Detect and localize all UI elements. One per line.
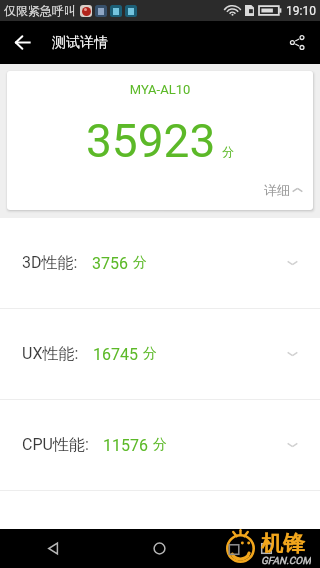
staticText: 分	[143, 345, 157, 363]
staticText: MYA-AL10	[7, 82, 313, 97]
button[interactable]: CPU性能:	[0, 400, 320, 490]
staticText: 3D性能:	[22, 253, 78, 273]
button[interactable]: 3D性能:	[0, 218, 320, 308]
staticText: CPU性能:	[22, 435, 89, 455]
staticText: 测试详情	[52, 34, 108, 52]
staticText: 仅限紧急呼叫	[4, 3, 76, 18]
staticText: 机锋	[261, 530, 305, 558]
staticText: 分	[153, 436, 167, 454]
button[interactable]: 分享	[275, 21, 320, 64]
staticText: 11576	[103, 436, 148, 455]
staticText: 16745	[93, 345, 138, 364]
button[interactable]: Home	[106, 529, 213, 568]
button[interactable]: UX性能:	[0, 309, 320, 399]
button[interactable]: 返回	[0, 21, 45, 64]
button[interactable]: Back	[0, 529, 106, 568]
staticText: GFAN.COM	[261, 555, 311, 566]
staticText: 35923	[86, 114, 216, 168]
staticText: 详细	[264, 182, 290, 198]
button[interactable]: Recents	[213, 529, 320, 568]
staticText: 3756	[92, 254, 128, 273]
staticText: 19:10	[286, 4, 316, 18]
staticText: 分	[222, 144, 234, 159]
staticText: 分	[133, 254, 147, 272]
staticText: UX性能:	[22, 344, 79, 364]
button[interactable]: MYA-AL10	[7, 71, 313, 210]
